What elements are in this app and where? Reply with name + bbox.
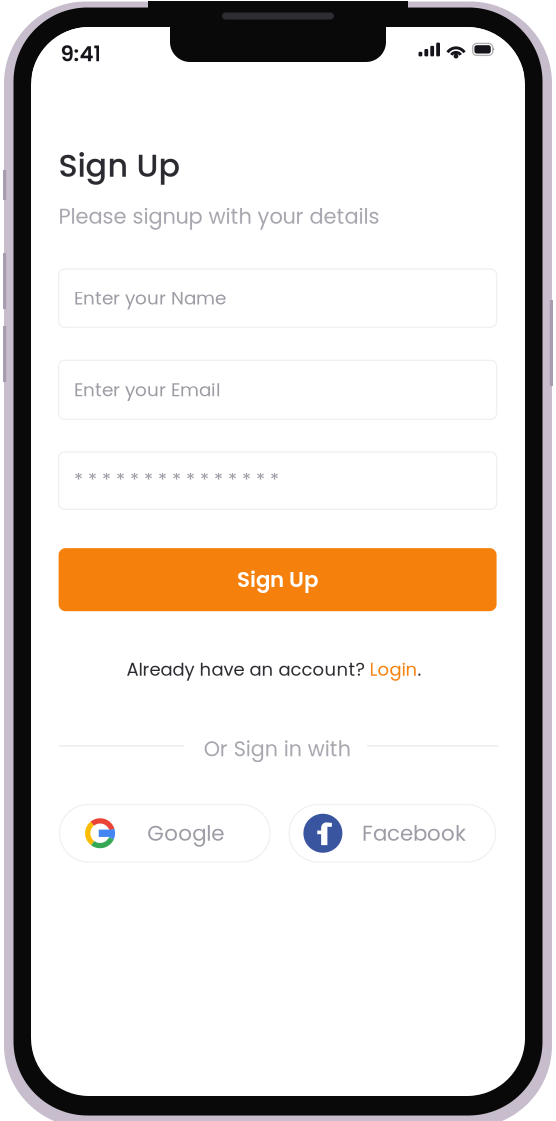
button[interactable]: Google: [59, 804, 270, 862]
staticText: Sign Up: [237, 565, 318, 595]
staticText: Enter your Email: [74, 377, 221, 403]
staticText: Enter your Name: [74, 285, 226, 311]
staticText: Sign Up: [59, 143, 181, 188]
staticText: Please signup with your details: [59, 202, 380, 231]
staticText: Or Sign in with: [204, 734, 351, 763]
button[interactable]: Facebook: [289, 804, 496, 862]
staticText: .: [417, 657, 421, 682]
staticText: * * * * * * * * * * * * * * *: [74, 467, 279, 494]
button[interactable]: Enter your Email: [59, 360, 497, 419]
button[interactable]: Enter your Name: [59, 269, 497, 327]
button[interactable]: * * * * * * * * * * * * * * *: [59, 452, 497, 509]
staticText: Login: [369, 657, 417, 682]
button[interactable]: Sign Up: [59, 548, 497, 611]
button[interactable]: Login: [369, 657, 417, 682]
staticText: 9:41: [60, 39, 101, 69]
staticText: Google: [147, 818, 224, 848]
staticText: Already have an account?: [126, 657, 369, 682]
staticText: Facebook: [362, 818, 466, 848]
